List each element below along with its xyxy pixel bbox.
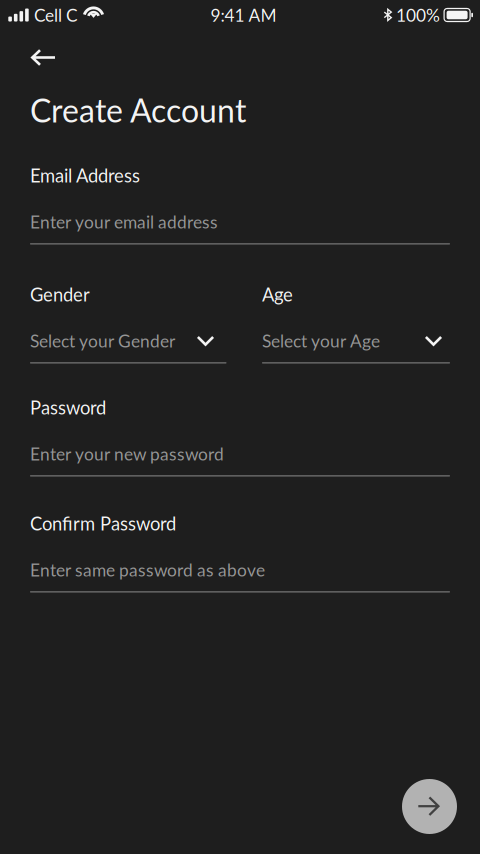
button[interactable]: Select your Gender <box>30 330 226 363</box>
staticText: Select your Age <box>262 330 380 351</box>
button[interactable]: Enter same password as above <box>30 559 450 592</box>
staticText: Enter your email address <box>30 211 218 232</box>
staticText: Gender <box>30 283 90 305</box>
staticText: 100% <box>396 5 440 25</box>
button[interactable]: Select your Age <box>262 330 450 363</box>
button[interactable]: Next <box>402 779 457 834</box>
staticText: Select your Gender <box>30 330 175 351</box>
staticText: 9:41 AM <box>211 5 277 25</box>
staticText: Cell C <box>34 5 78 25</box>
staticText: Create Account <box>30 91 246 129</box>
staticText: Email Address <box>30 164 140 186</box>
staticText: Enter your new password <box>30 443 224 464</box>
button[interactable]: Enter your new password <box>30 443 450 476</box>
staticText: Password <box>30 396 106 418</box>
staticText: Age <box>262 283 293 305</box>
staticText: Confirm Password <box>30 512 176 534</box>
button[interactable]: Back <box>0 30 74 91</box>
button[interactable]: Enter your email address <box>30 211 450 244</box>
staticText: Enter same password as above <box>30 559 265 580</box>
